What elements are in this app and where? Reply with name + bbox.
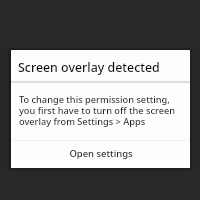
staticText: Screen overlay detected	[18, 59, 160, 76]
staticText: Open settings	[69, 147, 133, 160]
button[interactable]: Open settings	[11, 140, 190, 168]
staticText: To change this permission setting, you f…	[19, 93, 175, 127]
